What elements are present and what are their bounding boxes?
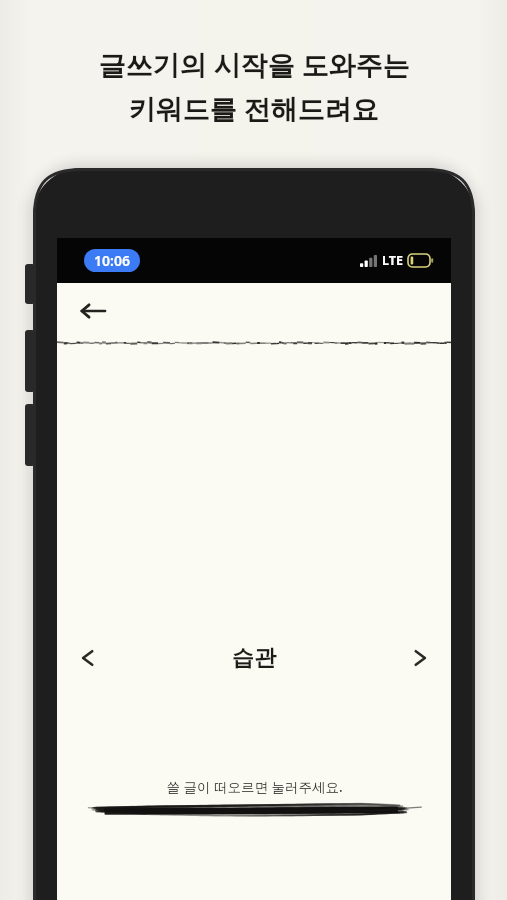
staticText: 쓸 글이 떠오르면 눌러주세요. (166, 778, 343, 796)
staticText: 키워드를 전해드려요 (128, 90, 379, 127)
staticText: 10:06 (94, 251, 130, 270)
staticText: 글쓰기의 시작을 도와주는 (98, 46, 410, 83)
button[interactable]: Previous keyword (65, 636, 109, 680)
button[interactable]: Next keyword (399, 636, 443, 680)
staticText: 습관 (232, 644, 276, 672)
staticText: LTE (382, 252, 403, 269)
button[interactable]: Back (71, 289, 115, 333)
button[interactable]: 쓸 글이 떠오르면 눌러주세요. (57, 778, 451, 822)
